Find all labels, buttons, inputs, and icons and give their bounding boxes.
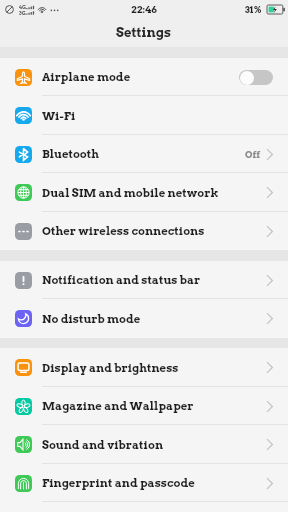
staticText: No disturb mode (42, 312, 141, 326)
staticText: Dual SIM and mobile network (42, 186, 219, 200)
staticText: Sound and vibration (42, 438, 164, 452)
button[interactable]: Bluetooth (0, 135, 288, 173)
button[interactable]: Airplane mode toggle, off (239, 70, 273, 85)
staticText: Other wireless connections (42, 224, 205, 238)
staticText: Off (245, 149, 261, 160)
staticText: 31% (245, 4, 262, 15)
staticText: Magazine and Wallpaper (42, 399, 194, 413)
staticText: Bluetooth (42, 147, 99, 161)
staticText: 22:46 (131, 3, 157, 15)
button[interactable]: Display and brightness (0, 348, 288, 387)
button[interactable]: Airplane mode (0, 58, 288, 96)
button[interactable]: Wi-Fi (0, 96, 288, 135)
staticText: 3G (19, 10, 26, 15)
staticText: Fingerprint and passcode (42, 476, 195, 490)
button[interactable]: Fingerprint and passcode (0, 464, 288, 502)
staticText: Wi-Fi (42, 109, 76, 123)
staticText: 4G (19, 4, 26, 10)
staticText: Notification and status bar (42, 273, 201, 287)
button[interactable]: Sound and vibration (0, 425, 288, 464)
button[interactable]: Notification and status bar (0, 261, 288, 299)
button[interactable]: Dual SIM and mobile network (0, 173, 288, 212)
staticText: Display and brightness (42, 361, 179, 375)
button[interactable]: Other wireless connections (0, 212, 288, 250)
staticText: Airplane mode (42, 70, 131, 84)
button[interactable]: Magazine and Wallpaper (0, 387, 288, 425)
staticText: Settings (116, 25, 172, 41)
button[interactable]: No disturb mode (0, 299, 288, 338)
